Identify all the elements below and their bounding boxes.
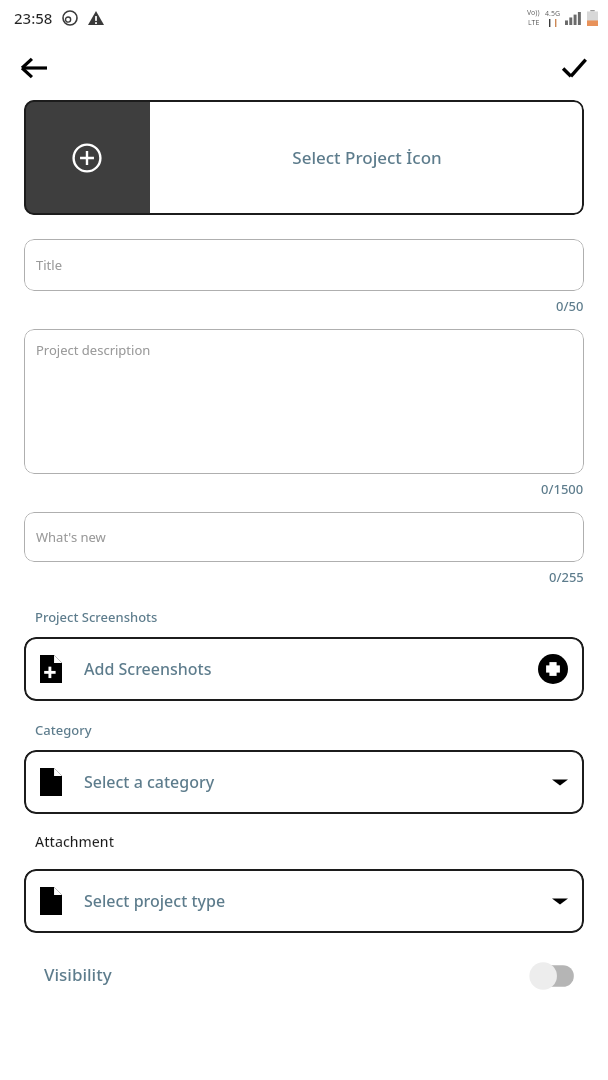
button[interactable]: Select a category: [24, 750, 584, 814]
button[interactable]: Back: [10, 44, 58, 92]
button[interactable]: Select project type: [24, 869, 584, 933]
staticText: What's new: [36, 528, 106, 546]
staticText: Add Screenshots: [84, 658, 212, 680]
staticText: Vo)): [527, 8, 540, 18]
button[interactable]: Title: [24, 239, 584, 291]
staticText: Category: [35, 721, 92, 739]
button[interactable]: Project description: [24, 329, 584, 474]
button[interactable]: Save: [550, 44, 598, 92]
button[interactable]: Add Screenshots: [24, 637, 584, 701]
staticText: 0/50: [556, 297, 584, 315]
button[interactable]: What's new: [24, 512, 584, 562]
staticText: 0/1500: [541, 480, 584, 498]
staticText: Visibility: [44, 963, 112, 986]
button[interactable]: Select Project İcon: [24, 100, 584, 215]
staticText: Select Project İcon: [292, 146, 442, 169]
staticText: Attachment: [35, 832, 114, 851]
staticText: Project Screenshots: [35, 608, 158, 626]
button[interactable]: Visibility toggle: [526, 961, 578, 991]
staticText: Select a category: [84, 771, 215, 793]
staticText: Title: [36, 256, 62, 274]
staticText: LTE: [528, 18, 540, 28]
staticText: 0/255: [549, 568, 584, 586]
staticText: Select project type: [84, 890, 226, 912]
staticText: 23:58: [14, 8, 53, 28]
staticText: 4.5G: [545, 9, 560, 19]
staticText: Project description: [36, 341, 151, 359]
